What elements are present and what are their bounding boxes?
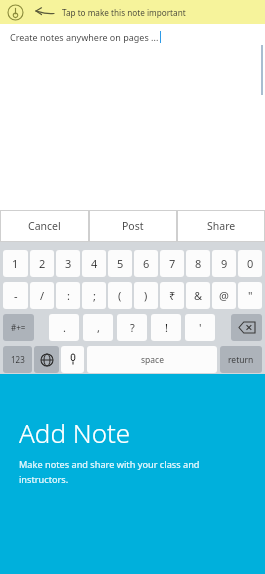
- button[interactable]: 4: [82, 250, 106, 277]
- staticText: 5: [117, 256, 124, 271]
- staticText: ₹: [169, 288, 176, 303]
- button[interactable]: .: [49, 314, 79, 341]
- staticText: ': [199, 320, 202, 335]
- staticText: ): [144, 288, 148, 303]
- button[interactable]: return: [220, 346, 262, 373]
- button[interactable]: 1: [3, 250, 28, 277]
- staticText: space: [141, 354, 164, 366]
- staticText: #+=: [11, 322, 26, 333]
- staticText: ": [248, 288, 253, 303]
- button[interactable]: ;: [82, 282, 106, 309]
- button[interactable]: @: [212, 282, 236, 309]
- staticText: 0: [247, 256, 254, 271]
- button[interactable]: &: [186, 282, 210, 309]
- other: Important: [7, 4, 24, 21]
- staticText: ;: [93, 288, 96, 303]
- staticText: 9: [221, 256, 228, 271]
- button[interactable]: ,: [83, 314, 113, 341]
- button[interactable]: ₹: [160, 282, 184, 309]
- staticText: Add Note: [19, 415, 131, 450]
- staticText: Post: [122, 219, 144, 233]
- staticText: 1: [12, 256, 19, 271]
- other: Arrow pointing left: [34, 6, 54, 18]
- button[interactable]: 8: [186, 250, 210, 277]
- button[interactable]: 5: [108, 250, 132, 277]
- staticText: return: [228, 354, 254, 366]
- staticText: /: [40, 288, 45, 303]
- button[interactable]: 2: [30, 250, 54, 277]
- staticText: 6: [143, 256, 150, 271]
- button[interactable]: Cancel: [0, 210, 89, 242]
- button[interactable]: 123: [3, 346, 32, 373]
- button[interactable]: 7: [160, 250, 184, 277]
- button[interactable]: space: [87, 346, 217, 373]
- staticText: 8: [195, 256, 202, 271]
- staticText: Make notes and share with your class and: [19, 458, 200, 471]
- staticText: Tap to make this note important: [62, 7, 186, 18]
- button[interactable]: :: [56, 282, 80, 309]
- staticText: Share: [207, 219, 236, 233]
- button[interactable]: /: [30, 282, 54, 309]
- button[interactable]: Share: [177, 210, 265, 242]
- button[interactable]: 6: [134, 250, 158, 277]
- staticText: 123: [11, 354, 25, 365]
- staticText: Create notes anywhere on pages ...: [10, 31, 159, 43]
- button[interactable]: #+=: [3, 314, 34, 341]
- button[interactable]: 0: [238, 250, 262, 277]
- button[interactable]: 9: [212, 250, 236, 277]
- staticText: 4: [91, 256, 98, 271]
- button[interactable]: (: [108, 282, 132, 309]
- staticText: (: [118, 288, 122, 303]
- staticText: @: [219, 288, 229, 303]
- staticText: ?: [130, 320, 135, 335]
- staticText: -: [14, 288, 18, 303]
- staticText: .: [63, 320, 66, 335]
- button[interactable]: Post: [89, 210, 177, 242]
- button[interactable]: ": [238, 282, 262, 309]
- staticText: Cancel: [28, 219, 61, 233]
- button[interactable]: Change language: [34, 346, 59, 373]
- staticText: &: [194, 288, 203, 303]
- staticText: !: [165, 320, 168, 335]
- staticText: ,: [97, 320, 100, 335]
- button[interactable]: 3: [56, 250, 80, 277]
- button[interactable]: ?: [117, 314, 147, 341]
- button[interactable]: ': [185, 314, 215, 341]
- button[interactable]: Create notes anywhere on pages ...: [10, 31, 161, 43]
- staticText: 7: [169, 256, 176, 271]
- staticText: instructors.: [19, 473, 69, 486]
- button[interactable]: -: [3, 282, 28, 309]
- button[interactable]: Important: [0, 0, 265, 24]
- staticText: 3: [65, 256, 72, 271]
- staticText: 2: [39, 256, 46, 271]
- staticText: :: [67, 288, 70, 303]
- button[interactable]: !: [151, 314, 181, 341]
- button[interactable]: ): [134, 282, 158, 309]
- button[interactable]: Backspace: [231, 314, 262, 341]
- button[interactable]: Voice input: [61, 346, 84, 373]
